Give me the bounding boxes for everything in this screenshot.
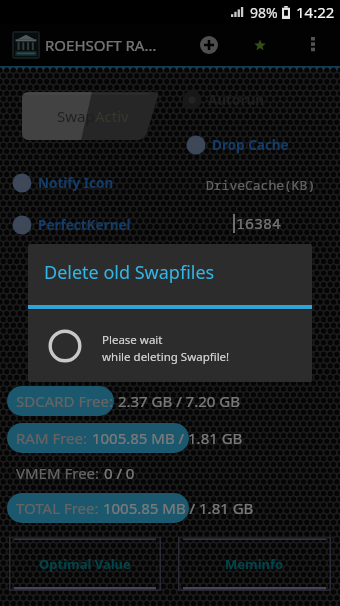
staticText: 1005.85 MB / 1.81 GB	[99, 498, 254, 518]
button[interactable]: Swap activate toggle	[22, 92, 161, 140]
staticText: 2.37 GB / 7.20 GB	[114, 391, 240, 411]
staticText: Autorun	[208, 91, 264, 109]
staticText: 14:22	[296, 2, 335, 22]
button[interactable]: Meminfo	[178, 537, 331, 591]
staticText: Swap	[57, 106, 95, 126]
staticText: 98%	[250, 3, 278, 22]
button[interactable]: Autorun	[181, 89, 264, 111]
staticText: Optimal Value	[39, 555, 131, 573]
button[interactable]: More options	[285, 24, 340, 66]
staticText: Please wait	[102, 332, 163, 348]
button[interactable]: PerfectKernel	[11, 214, 131, 236]
staticText: DriveCache(KB)	[206, 176, 316, 194]
button[interactable]: Notify Icon	[11, 172, 114, 194]
staticText: ROEHSOFT RA…	[45, 35, 157, 55]
button[interactable]: Drop Cache	[185, 134, 289, 156]
staticText: Delete old Swapfiles	[44, 260, 215, 285]
staticText: TOTAL Free:	[16, 498, 99, 518]
staticText: PerfectKernel	[38, 216, 131, 234]
staticText: Notify Icon	[38, 174, 114, 192]
button[interactable]: Add	[183, 24, 235, 66]
staticText: 16384	[236, 213, 282, 233]
staticText: 0 / 0	[100, 463, 135, 483]
button[interactable]: Optimal Value	[9, 537, 161, 591]
staticText: 1005.85 MB / 1.81 GB	[88, 428, 243, 448]
staticText: while deleting Swapfile!	[102, 349, 230, 365]
staticText: Drop Cache	[212, 136, 289, 154]
button[interactable]: App icon	[12, 31, 40, 59]
staticText: RAM Free:	[16, 428, 88, 448]
staticText: VMEM Free:	[16, 463, 100, 483]
staticText: Activ	[95, 106, 129, 126]
staticText: SDCARD Free:	[16, 391, 114, 411]
staticText: Meminfo	[225, 555, 284, 573]
button[interactable]: Favorite	[235, 24, 285, 66]
